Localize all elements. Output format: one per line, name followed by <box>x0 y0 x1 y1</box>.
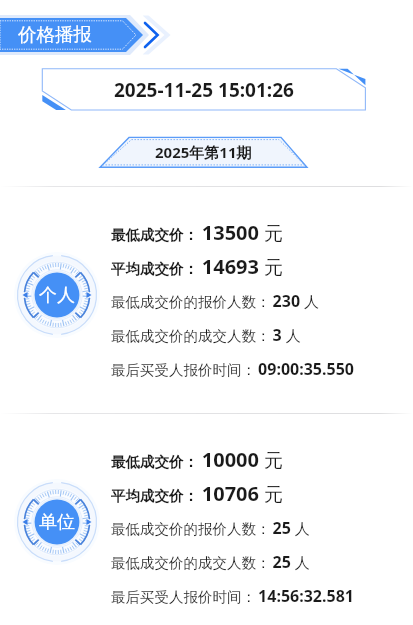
button[interactable]: 平均成交价： 14693 元 <box>111 253 283 277</box>
staticText: 价格播报 <box>18 23 92 46</box>
staticText: 2025-11-25 15:01:26 <box>114 77 294 103</box>
button[interactable]: 最后买受人报价时间： 14:56:32.581 <box>111 585 354 607</box>
staticText: 平均成交价： 10706 元 <box>111 480 283 504</box>
staticText: 最低成交价： 10000 元 <box>111 446 283 470</box>
button[interactable]: 最后买受人报价时间： 09:00:35.550 <box>111 358 354 380</box>
button[interactable]: 最低成交价的报价人数： 25 人 <box>111 517 310 539</box>
staticText: 最低成交价的成交人数： 3 人 <box>111 324 301 346</box>
button[interactable]: 最低成交价的成交人数： 25 人 <box>111 551 310 573</box>
staticText: 最低成交价的报价人数： 25 人 <box>111 517 310 539</box>
staticText: 最后买受人报价时间： 09:00:35.550 <box>111 358 354 380</box>
button[interactable]: 最低成交价： 10000 元 <box>111 446 283 470</box>
button[interactable]: 最低成交价的成交人数： 3 人 <box>111 324 301 346</box>
button[interactable]: 最低成交价： 13500 元 <box>111 219 283 243</box>
staticText: 最后买受人报价时间： 14:56:32.581 <box>111 585 354 607</box>
button[interactable]: 单位 <box>13 478 101 566</box>
button[interactable]: 个人 <box>13 251 101 339</box>
staticText: 单位 <box>39 511 75 534</box>
staticText: 个人 <box>39 284 75 307</box>
button[interactable]: 2025年第11期 <box>100 137 307 167</box>
button[interactable]: 平均成交价： 10706 元 <box>111 480 283 504</box>
staticText: 最低成交价的成交人数： 25 人 <box>111 551 310 573</box>
staticText: 平均成交价： 14693 元 <box>111 253 283 277</box>
staticText: 最低成交价： 13500 元 <box>111 219 283 243</box>
button[interactable]: 价格播报 <box>0 18 143 52</box>
button[interactable]: 2025-11-25 15:01:26 <box>42 69 365 110</box>
button[interactable]: 最低成交价的报价人数： 230 人 <box>111 290 319 312</box>
staticText: 最低成交价的报价人数： 230 人 <box>111 290 319 312</box>
staticText: 2025年第11期 <box>155 142 252 162</box>
